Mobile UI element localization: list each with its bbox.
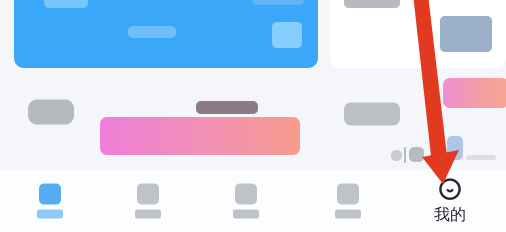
button[interactable]: Secondary card	[330, 0, 506, 68]
button[interactable]: Tab	[300, 170, 396, 232]
button[interactable]: 我的	[402, 170, 498, 232]
staticText: 我的	[434, 205, 466, 224]
button[interactable]: Promotion	[100, 117, 300, 155]
button[interactable]: Promotion	[443, 78, 506, 108]
button[interactable]: Promotion banner	[14, 0, 318, 68]
button[interactable]: Tile	[344, 102, 400, 125]
button[interactable]: Tab	[100, 170, 196, 232]
button[interactable]: Tab	[2, 170, 98, 232]
button[interactable]: Tile	[28, 99, 74, 124]
button[interactable]: Tab	[198, 170, 294, 232]
